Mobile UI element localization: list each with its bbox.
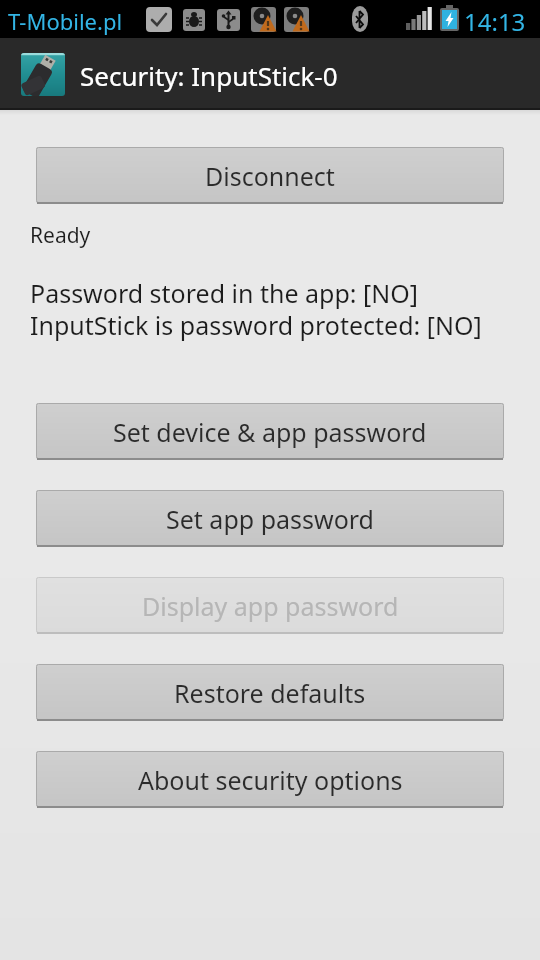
button[interactable]: Set app password — [36, 490, 504, 547]
staticText: Disconnect — [205, 159, 335, 193]
staticText: Ready — [30, 221, 91, 250]
button[interactable]: About security options — [36, 751, 504, 808]
button[interactable]: Restore defaults — [36, 664, 504, 721]
button[interactable]: Disconnect — [36, 147, 504, 204]
staticText: Display app password — [142, 589, 399, 623]
staticText: About security options — [138, 763, 403, 797]
staticText: 14:13 — [464, 5, 526, 38]
staticText: T-Mobile.pl — [8, 6, 123, 36]
staticText: Security: InputStick-0 — [80, 58, 338, 93]
button[interactable]: Display app password — [36, 577, 504, 634]
staticText: Set app password — [166, 502, 374, 536]
staticText: Password stored in the app: [NO] InputSt… — [30, 276, 482, 342]
button[interactable]: Set device & app password — [36, 403, 504, 460]
staticText: Set device & app password — [113, 415, 427, 449]
staticText: Restore defaults — [174, 676, 366, 710]
